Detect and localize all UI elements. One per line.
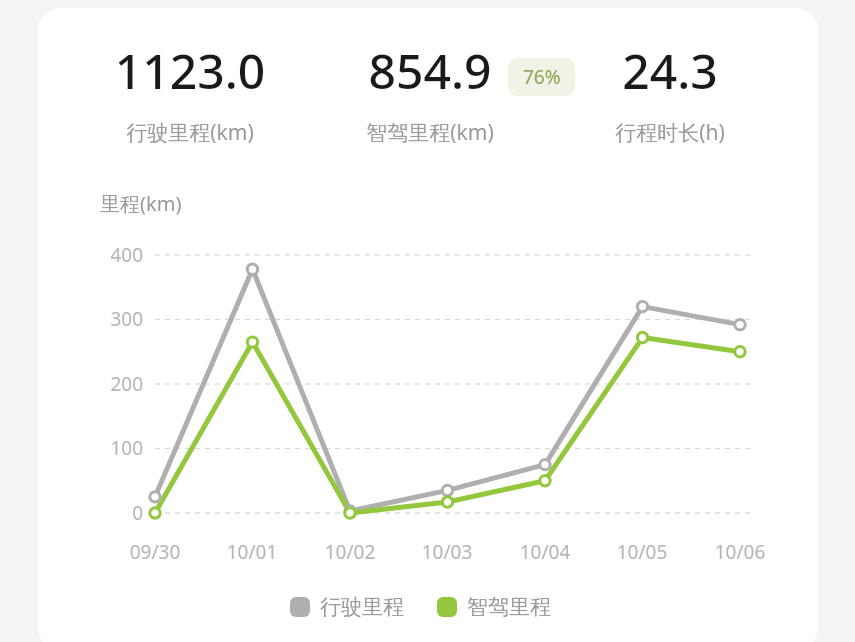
staticText: 854.9 [330, 38, 530, 115]
staticText: 10/02 [305, 539, 395, 569]
staticText: 行驶里程(km) [70, 118, 310, 152]
staticText: 200 [88, 371, 143, 401]
staticText: 400 [88, 242, 143, 272]
staticText: 100 [88, 435, 143, 465]
staticText: 行程时长(h) [575, 118, 765, 152]
staticText: 10/01 [207, 539, 297, 569]
staticText: 10/06 [695, 539, 785, 569]
staticText: 300 [88, 306, 143, 336]
staticText: 10/04 [500, 539, 590, 569]
staticText: 09/30 [110, 539, 200, 569]
staticText: 24.3 [575, 38, 765, 115]
staticText: 10/05 [597, 539, 687, 569]
button[interactable]: 行驶里程 [290, 590, 425, 624]
staticText: 1123.0 [70, 38, 310, 115]
staticText: 里程(km) [100, 190, 240, 222]
staticText: 0 [88, 500, 143, 530]
button[interactable]: 76% [508, 58, 575, 96]
staticText: 智驾里程(km) [330, 118, 530, 152]
staticText: 行驶里程 [320, 594, 404, 620]
staticText: 智驾里程 [467, 594, 551, 620]
staticText: 10/03 [402, 539, 492, 569]
button[interactable]: 智驾里程 [437, 590, 572, 624]
staticText: 76% [523, 64, 561, 90]
